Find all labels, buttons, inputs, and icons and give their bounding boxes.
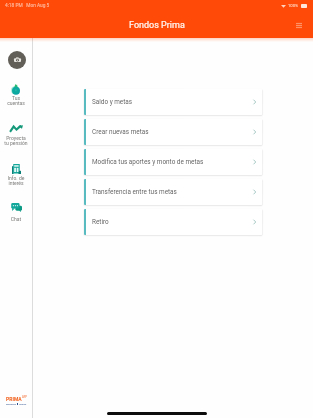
button[interactable]: Retiro — [84, 209, 262, 235]
staticText: Chat — [0, 216, 32, 222]
staticText: PRIMA — [6, 396, 22, 402]
button[interactable]: Profile photo — [8, 51, 26, 69]
staticText: AFP — [22, 396, 27, 399]
button[interactable]: Info. de interés — [0, 164, 32, 187]
staticText: 100% — [288, 3, 299, 8]
staticText: Proyecta tu pensión — [0, 135, 32, 146]
button[interactable]: Crear nuevas metas — [84, 119, 262, 145]
staticText: Modifica tus aportes y monto de metas — [92, 158, 252, 166]
button[interactable]: Tus cuentas — [0, 84, 32, 107]
staticText: Info. de interés — [0, 175, 32, 186]
button[interactable]: Chat — [0, 203, 32, 228]
staticText: Tus cuentas — [0, 95, 32, 106]
staticText: una empresa — [6, 403, 16, 405]
staticText: Fondos Prima — [129, 20, 185, 31]
staticText: 4:18 PM Mon Aug 5 — [5, 3, 50, 9]
button[interactable]: Menu — [292, 18, 306, 32]
button[interactable]: Saldo y metas — [84, 89, 262, 115]
button[interactable]: Modifica tus aportes y monto de metas — [84, 149, 262, 175]
staticText: Saldo y metas — [92, 98, 252, 106]
staticText: Crear nuevas metas — [92, 128, 252, 136]
button[interactable]: Transferencia entre tus metas — [84, 179, 262, 205]
staticText: Transferencia entre tus metas — [92, 188, 252, 196]
staticText: Retiro — [92, 218, 252, 226]
button[interactable]: Proyecta tu pensión — [0, 125, 32, 147]
staticText: credicorp — [19, 403, 27, 405]
